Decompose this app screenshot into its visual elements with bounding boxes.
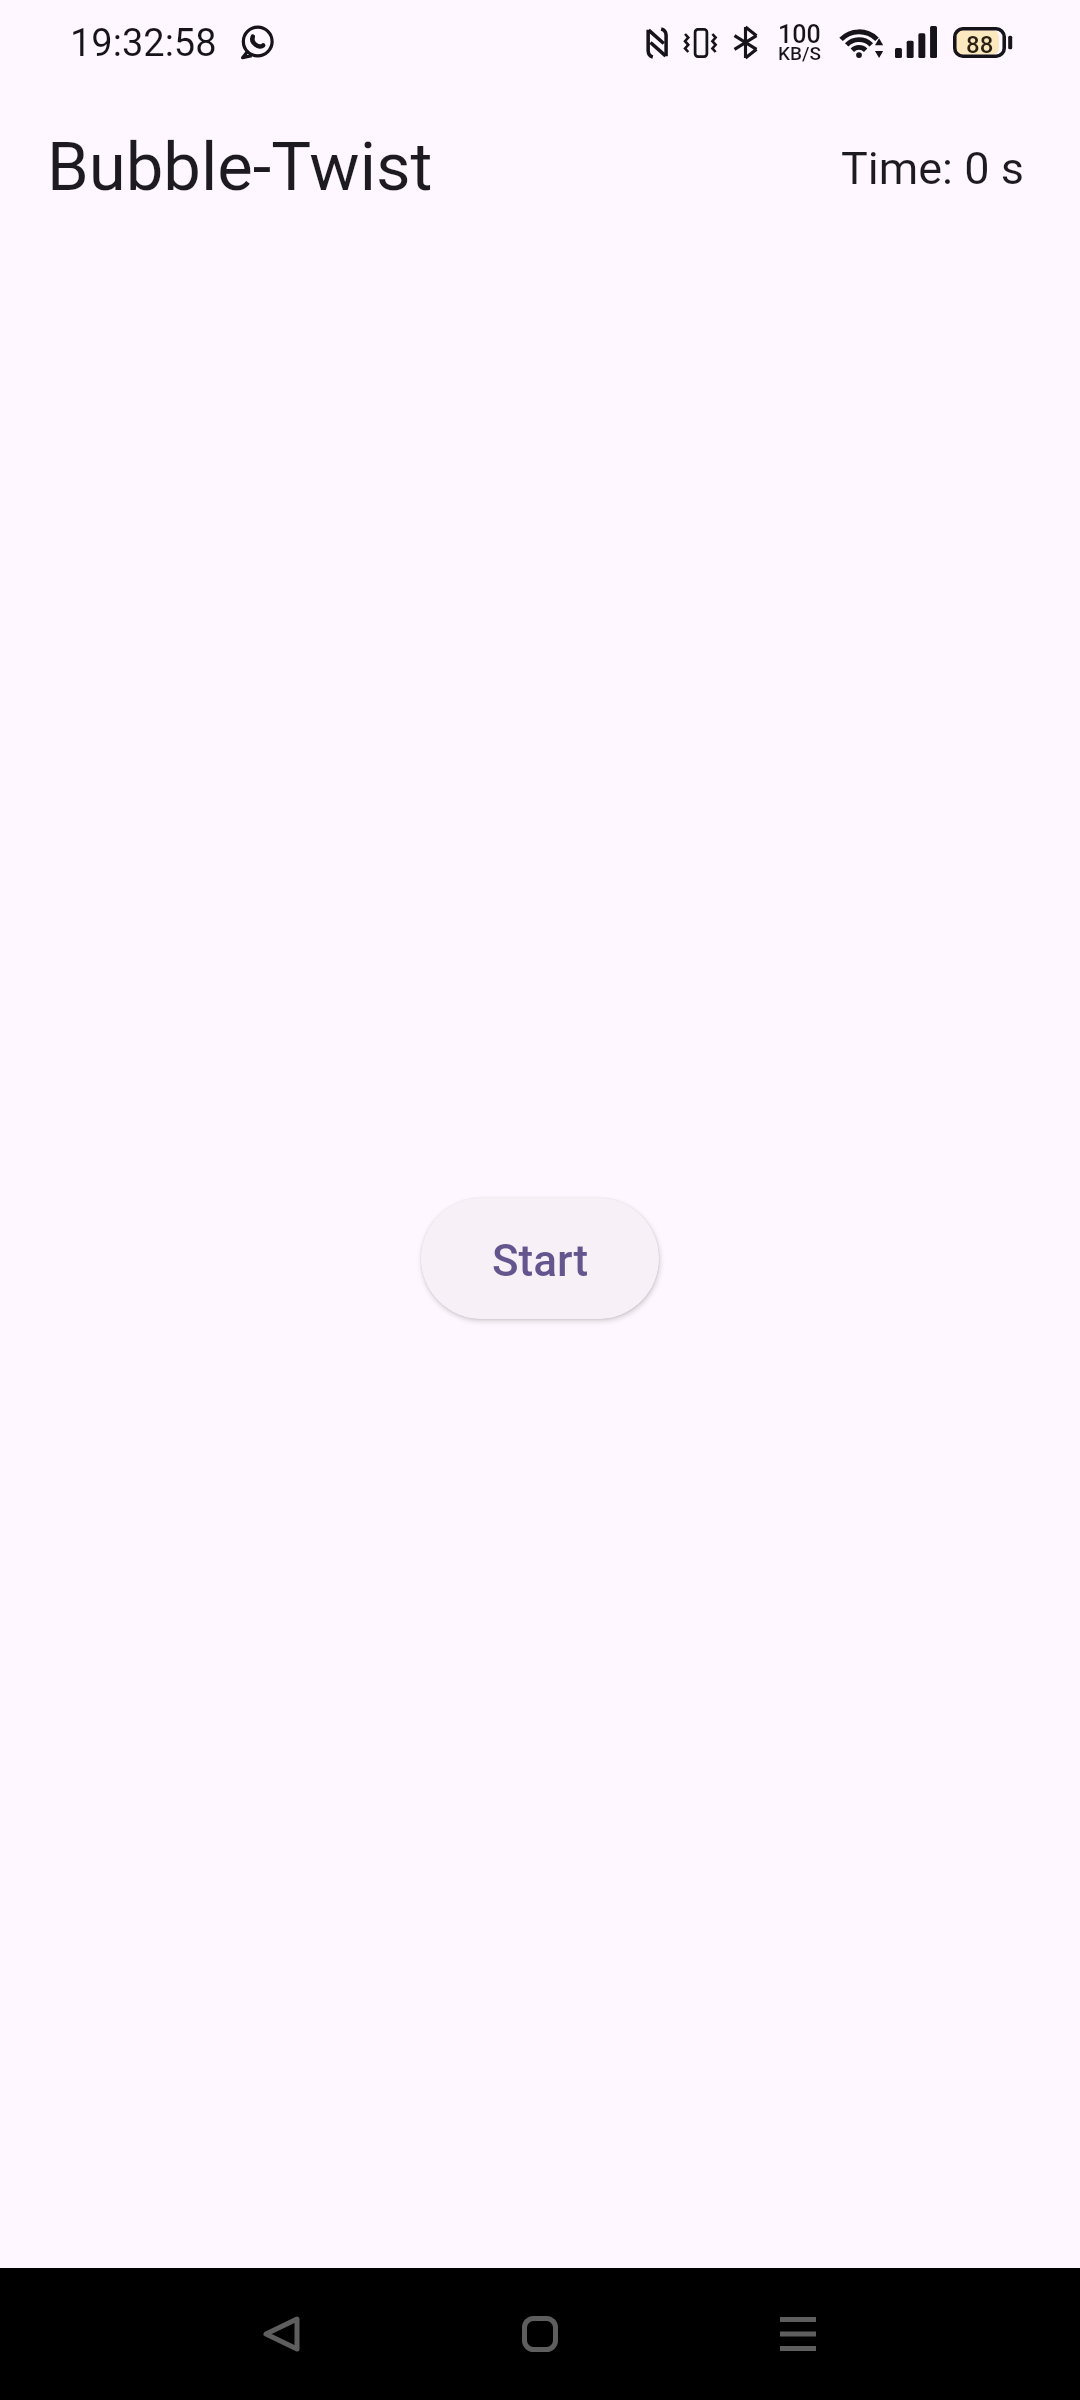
button[interactable]: Home xyxy=(450,2268,630,2400)
staticText: Time: 0 s xyxy=(841,142,1024,195)
staticText: KB/S xyxy=(778,42,821,64)
staticText: 100 xyxy=(778,20,821,49)
staticText: 88 xyxy=(966,31,994,59)
staticText: Start xyxy=(492,1235,589,1287)
staticText: 19:32:58 xyxy=(70,21,217,66)
button[interactable]: Start xyxy=(421,1198,659,1319)
button[interactable]: Recent apps xyxy=(708,2268,888,2400)
button[interactable]: Back xyxy=(191,2268,371,2400)
staticText: Bubble-Twist xyxy=(47,128,433,207)
